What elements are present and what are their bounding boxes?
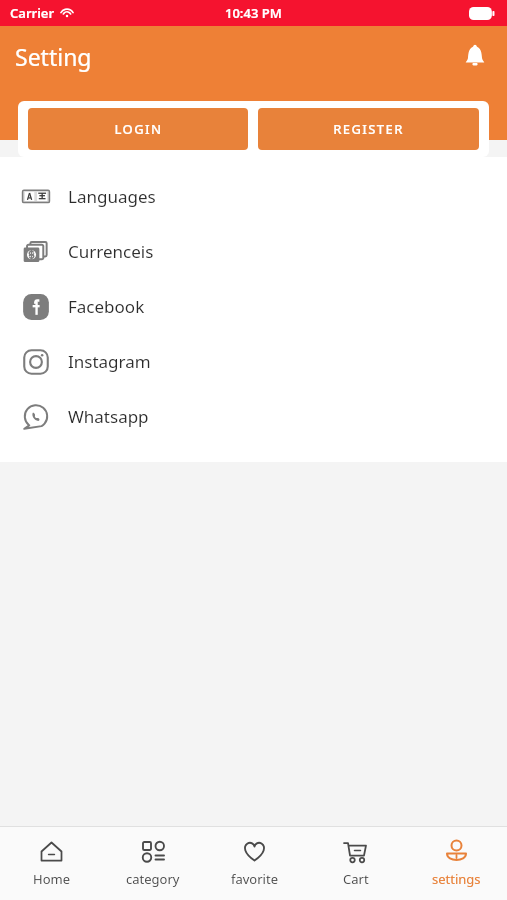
staticText: LOGIN [114, 120, 163, 138]
staticText: Instagram [68, 350, 151, 373]
button[interactable]: REGISTER [258, 108, 479, 150]
button[interactable]: Languages [0, 169, 507, 224]
button[interactable]: Notifications [457, 38, 493, 74]
staticText: favorite [231, 870, 278, 888]
button[interactable]: Cart [305, 827, 406, 900]
staticText: Facebook [68, 295, 145, 318]
button[interactable]: favorite [204, 827, 305, 900]
button[interactable]: Facebook [0, 279, 507, 334]
button[interactable]: LOGIN [28, 108, 248, 150]
staticText: Currenceis [68, 240, 154, 263]
staticText: Cart [343, 870, 369, 888]
staticText: Setting [15, 41, 92, 72]
button[interactable]: Instagram [0, 334, 507, 389]
button[interactable]: category [102, 827, 204, 900]
staticText: Languages [68, 185, 156, 208]
staticText: Carrier [10, 4, 55, 22]
staticText: category [126, 870, 180, 888]
staticText: REGISTER [333, 120, 404, 138]
staticText: Home [33, 870, 70, 888]
button[interactable]: Whatsapp [0, 389, 507, 444]
button[interactable]: settings [406, 827, 507, 900]
staticText: settings [432, 870, 481, 888]
staticText: Whatsapp [68, 405, 149, 428]
button[interactable]: Currenceis [0, 224, 507, 279]
button[interactable]: Home [0, 827, 102, 900]
staticText: 10:43 PM [225, 4, 282, 22]
